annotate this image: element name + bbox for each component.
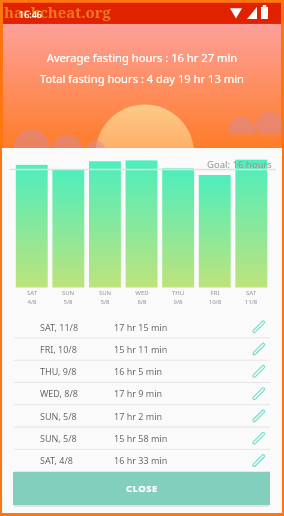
staticText: SAT, 11/8 <box>40 321 79 333</box>
button[interactable]: SAT, 4/8 <box>3 449 281 471</box>
staticText: 17 hr 2 min <box>114 410 163 422</box>
staticText: SUN, 5/8 <box>40 410 77 422</box>
staticText: 16 hr 33 min <box>114 454 168 466</box>
staticText: THU <box>162 289 194 298</box>
staticText: SUN <box>89 289 121 298</box>
staticText: FRI <box>199 289 231 298</box>
other: Signal strength <box>247 7 257 19</box>
staticText: SUN <box>52 289 84 298</box>
button[interactable]: WED, 8/8 <box>3 382 281 404</box>
staticText: 17 hr 9 min <box>114 387 163 399</box>
staticText: 15 hr 11 min <box>114 343 168 355</box>
staticText: THU, 9/8 <box>40 365 77 377</box>
staticText: CLOSE <box>126 482 158 495</box>
button[interactable]: CLOSE <box>13 472 270 505</box>
button[interactable]: SAT, 11/8 <box>3 316 281 338</box>
staticText: SUN, 5/8 <box>40 432 77 444</box>
staticText: 5/8 <box>52 298 84 307</box>
staticText: 5/8 <box>89 298 121 307</box>
staticText: Goal: 16 hours <box>207 158 272 171</box>
staticText: hackcheat.org <box>4 2 111 22</box>
button[interactable]: SUN, 5/8 <box>3 427 281 449</box>
staticText: Total fasting hours : 4 day 19 hr 13 min <box>0 71 284 516</box>
staticText: FRI, 10/8 <box>40 343 77 355</box>
staticText: SAT, 4/8 <box>40 454 73 466</box>
staticText: 10/8 <box>199 298 231 307</box>
staticText: 16:46 <box>19 8 43 20</box>
staticText: 4/8 <box>16 298 48 307</box>
other: Battery <box>261 5 268 19</box>
staticText: 15 hr 58 min <box>114 432 168 444</box>
staticText: 16 hr 5 min <box>114 365 163 377</box>
button[interactable]: SUN, 5/8 <box>3 405 281 427</box>
other: Wifi <box>230 7 242 19</box>
staticText: SAT <box>16 289 48 298</box>
button[interactable]: FRI, 10/8 <box>3 338 281 360</box>
staticText: 6/8 <box>126 298 158 307</box>
staticText: 11/8 <box>235 298 267 307</box>
staticText: 9/8 <box>162 298 194 307</box>
staticText: WED, 8/8 <box>40 387 78 399</box>
staticText: SAT <box>235 289 267 298</box>
button[interactable]: THU, 9/8 <box>3 360 281 382</box>
staticText: Average fasting hours : 16 hr 27 min <box>0 50 284 516</box>
staticText: 17 hr 15 min <box>114 321 168 333</box>
staticText: WED <box>126 289 158 298</box>
